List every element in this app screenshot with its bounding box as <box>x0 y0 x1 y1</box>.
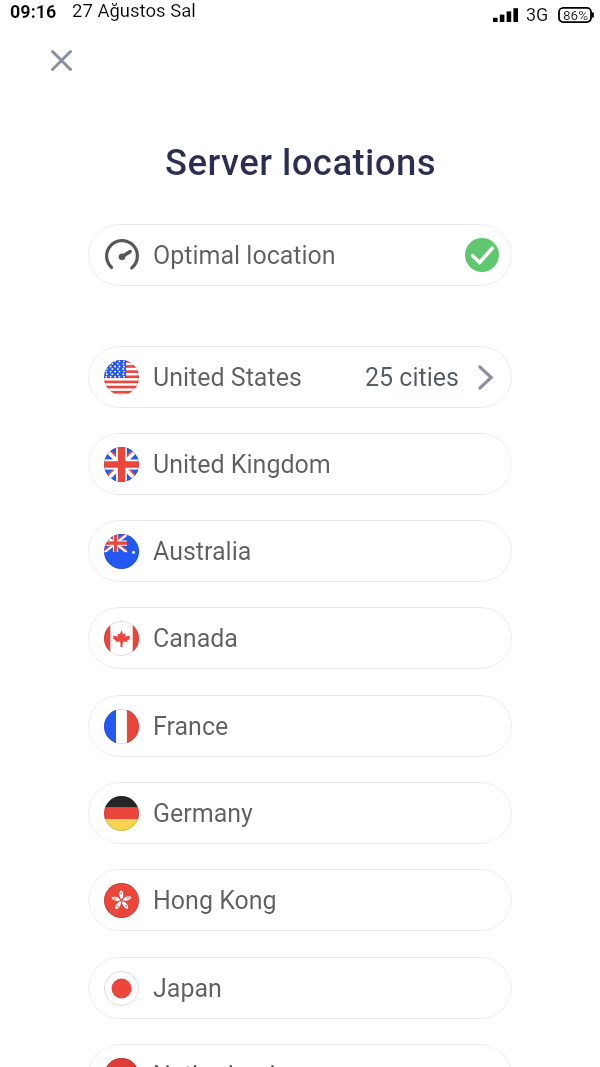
staticText: 86% <box>563 7 589 23</box>
button[interactable]: Hong Kong <box>88 869 512 931</box>
button[interactable]: Close <box>37 36 85 84</box>
staticText: United States <box>153 363 302 392</box>
staticText: Hong Kong <box>153 886 277 915</box>
staticText: United Kingdom <box>153 450 331 479</box>
staticText: Netherlands <box>153 1061 289 1067</box>
staticText: Optimal location <box>153 241 336 270</box>
staticText: Canada <box>153 624 238 653</box>
staticText: Australia <box>153 537 252 566</box>
staticText: France <box>153 712 229 741</box>
button[interactable]: United States <box>88 346 512 408</box>
button[interactable]: United Kingdom <box>88 433 512 495</box>
button[interactable]: Optimal location <box>88 224 512 286</box>
button[interactable]: Japan <box>88 957 512 1019</box>
staticText: 25 cities <box>365 363 459 392</box>
button[interactable]: Germany <box>88 782 512 844</box>
staticText: 3G <box>526 4 549 25</box>
staticText: Server locations <box>165 141 436 184</box>
staticText: 27 Ağustos Sal <box>72 0 196 22</box>
staticText: Germany <box>153 799 253 828</box>
staticText: Japan <box>153 974 222 1003</box>
button[interactable]: Canada <box>88 607 512 669</box>
button[interactable]: France <box>88 695 512 757</box>
staticText: 09:16 <box>10 1 57 22</box>
button[interactable]: Netherlands <box>88 1044 512 1067</box>
button[interactable]: Australia <box>88 520 512 582</box>
